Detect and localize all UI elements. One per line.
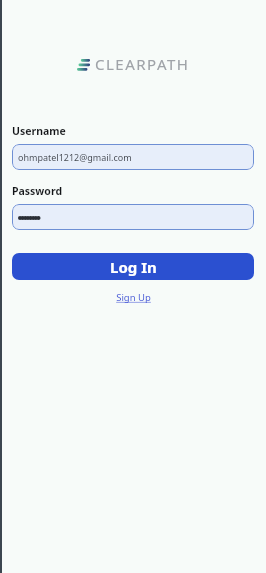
button[interactable]: Sign Up: [112, 290, 155, 305]
staticText: CLEARPATH: [95, 54, 190, 74]
button[interactable]: ohmpatel1212@gmail.com: [12, 144, 254, 170]
staticText: Log In: [110, 257, 157, 277]
staticText: Username: [12, 124, 66, 138]
staticText: Password: [12, 184, 63, 198]
button[interactable]: Log In: [12, 253, 254, 280]
staticText: ohmpatel1212@gmail.com: [18, 151, 132, 163]
button[interactable]: [12, 204, 254, 230]
staticText: Sign Up: [116, 291, 151, 304]
other: ClearPath logo: [77, 57, 90, 71]
